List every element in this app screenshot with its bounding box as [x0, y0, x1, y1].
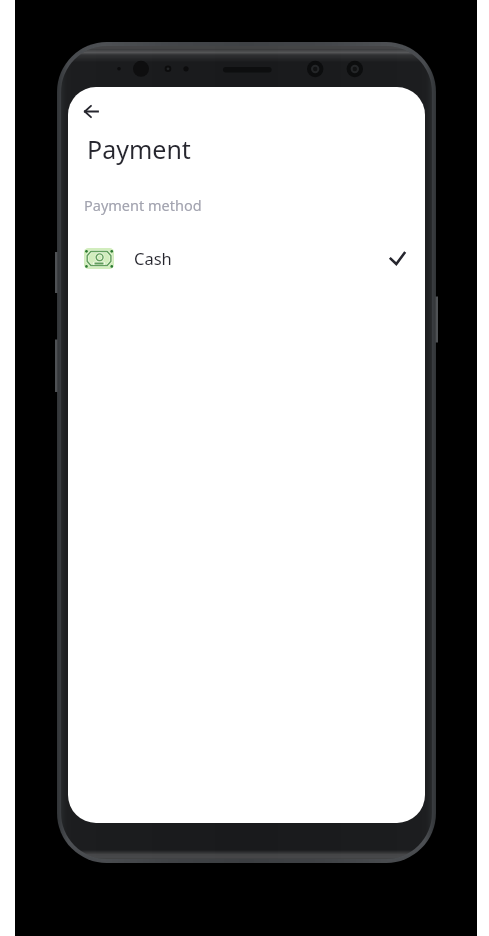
button[interactable]: Navigate up [70, 90, 112, 132]
staticText: Payment [87, 132, 191, 166]
button[interactable]: Cash [68, 235, 425, 281]
staticText: Payment method [84, 195, 202, 215]
staticText: Cash [134, 247, 172, 269]
other: Selected [389, 251, 406, 265]
